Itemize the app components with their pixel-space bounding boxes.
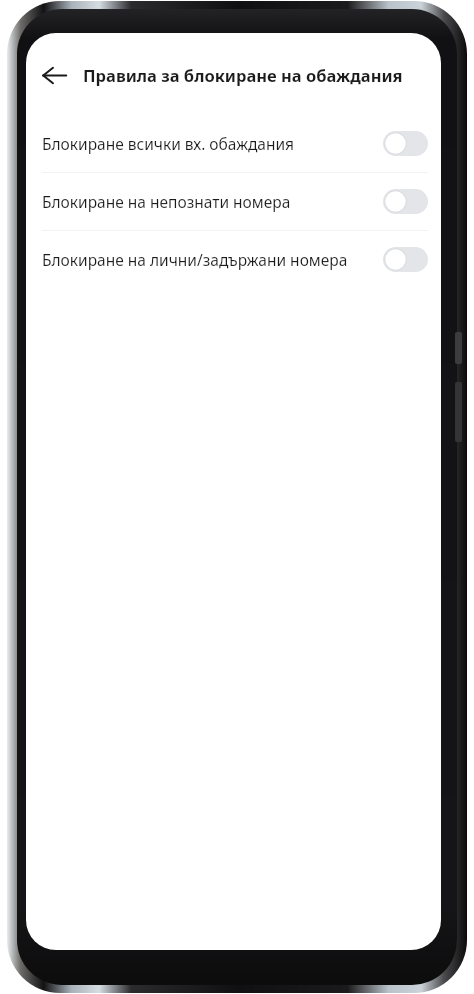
staticText: Блокиране на непознати номера	[42, 191, 369, 212]
staticText: Блокиране на лични/задържани номера	[42, 249, 369, 270]
button[interactable]: Блокиране всички вх. обаждания	[26, 115, 441, 172]
staticText: Правила за блокиране на обаждания	[83, 64, 403, 86]
button[interactable]: Toggle	[383, 247, 428, 272]
button[interactable]: Back	[32, 53, 76, 97]
button[interactable]: Toggle	[383, 131, 428, 156]
button[interactable]: Блокиране на непознати номера	[26, 173, 441, 230]
button[interactable]: Toggle	[383, 189, 428, 214]
staticText: Блокиране всички вх. обаждания	[42, 133, 369, 154]
button[interactable]: Блокиране на лични/задържани номера	[26, 231, 441, 288]
